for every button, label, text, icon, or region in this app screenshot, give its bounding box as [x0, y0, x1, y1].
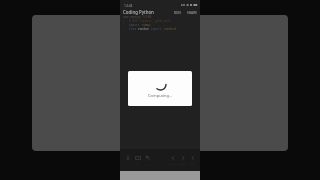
staticText: import: [129, 23, 142, 27]
staticText: RUN: [174, 11, 181, 15]
staticText: 14:44: [124, 3, 133, 7]
staticText: import: [151, 27, 164, 31]
button[interactable]: Select: [142, 149, 153, 171]
button[interactable]: RUN: [171, 9, 184, 17]
staticText: randint: [164, 27, 177, 31]
button[interactable]: Redo: [177, 149, 188, 171]
staticText: Computing...: [148, 93, 173, 98]
staticText: random: [138, 27, 151, 31]
staticText: 5.0 KB: [143, 15, 152, 19]
staticText: # MIT License, gthb.io/x: [129, 19, 171, 23]
staticText: numpy: [142, 23, 151, 27]
staticText: SHARE: [187, 11, 197, 15]
button[interactable]: Undo: [167, 149, 178, 171]
button[interactable]: Keyboard: [132, 149, 143, 171]
staticText: from: [129, 27, 138, 31]
staticText: new_main.py: [123, 15, 143, 19]
staticText: Coding Python: [123, 9, 154, 15]
button[interactable]: More: [187, 149, 198, 171]
button[interactable]: Save: [122, 149, 133, 171]
button[interactable]: SHARE: [184, 9, 200, 17]
